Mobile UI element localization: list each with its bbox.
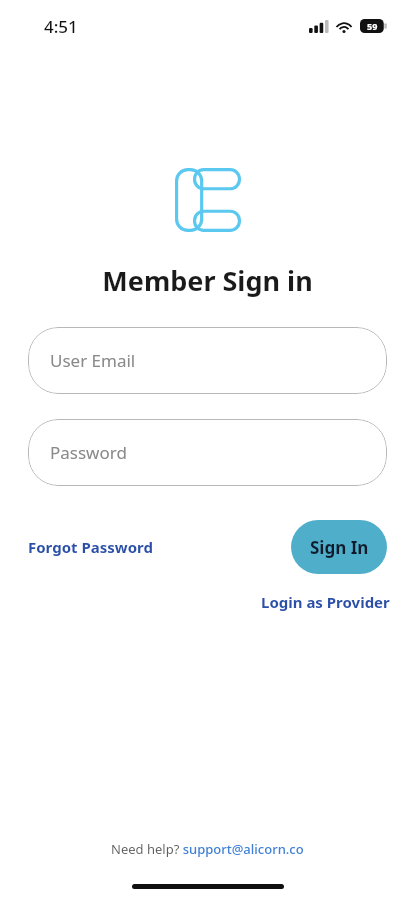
staticText: Login as Provider	[261, 592, 390, 612]
staticText: Sign In	[310, 536, 369, 559]
button[interactable]: Sign In	[291, 520, 387, 574]
staticText: Need help? support@alicorn.co	[111, 840, 304, 858]
staticText: Forgot Password	[28, 537, 153, 557]
other: Alicorn logo	[175, 168, 241, 232]
button[interactable]: User Email	[28, 327, 387, 394]
button[interactable]: Login as Provider	[261, 588, 390, 616]
button[interactable]: Password	[28, 419, 387, 486]
staticText: User Email	[50, 349, 136, 372]
staticText: Member Sign in	[102, 262, 313, 299]
staticText: 59	[367, 20, 378, 32]
staticText: 4:51	[44, 15, 78, 38]
button[interactable]: Need help? support@alicorn.co	[105, 836, 310, 862]
staticText: Password	[50, 441, 127, 464]
button[interactable]: Forgot Password	[28, 533, 153, 561]
